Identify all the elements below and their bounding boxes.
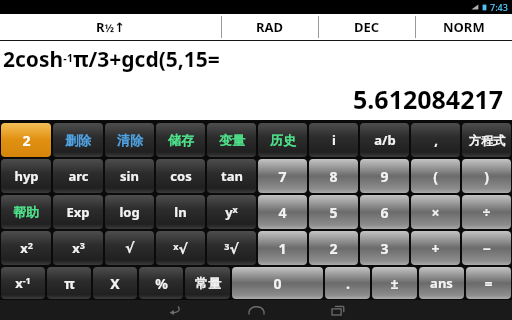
button[interactable]: , (411, 123, 460, 157)
button[interactable]: X (93, 267, 137, 299)
staticText: √ (125, 240, 135, 256)
button[interactable]: 6 (360, 195, 409, 229)
staticText: ± (390, 274, 399, 293)
button[interactable]: NORM (416, 14, 512, 40)
button[interactable]: DEC (319, 14, 415, 40)
staticText: hyp (14, 167, 39, 185)
button[interactable]: hyp (1, 159, 51, 193)
button[interactable]: 9 (360, 159, 409, 193)
button[interactable]: Home (243, 301, 269, 319)
staticText: log (119, 203, 140, 221)
button[interactable]: 储存 (156, 123, 205, 157)
staticText: x-1 (15, 274, 31, 292)
button[interactable]: Exp (53, 195, 103, 229)
staticText: 1 (278, 239, 287, 258)
button[interactable]: 3√ (207, 231, 256, 265)
staticText: Exp (66, 203, 90, 221)
button[interactable]: 2 (1, 123, 51, 157)
staticText: 7 (278, 167, 287, 186)
button[interactable]: arc (53, 159, 103, 193)
staticText: ans (430, 274, 453, 292)
staticText: ln (174, 203, 187, 221)
button[interactable]: √ (105, 231, 154, 265)
button[interactable]: 删除 (53, 123, 103, 157)
staticText: π (64, 274, 75, 293)
button[interactable]: a/b (360, 123, 409, 157)
button[interactable]: x√ (156, 231, 205, 265)
staticText: . (346, 274, 350, 293)
staticText: 0 (273, 274, 282, 293)
staticText: 6 (380, 203, 389, 222)
staticText: = (484, 274, 493, 293)
button[interactable]: . (325, 267, 370, 299)
staticText: cos (170, 167, 192, 185)
staticText: − (482, 239, 491, 258)
staticText: DEC (354, 18, 380, 36)
staticText: ) (484, 167, 489, 186)
button[interactable]: i (309, 123, 358, 157)
button[interactable]: % (139, 267, 183, 299)
staticText: 方程式 (469, 133, 505, 148)
button[interactable]: ± (372, 267, 417, 299)
button[interactable]: cos (156, 159, 205, 193)
staticText: 2 (329, 239, 338, 258)
staticText: NORM (443, 18, 485, 36)
staticText: 7:43 (490, 1, 508, 13)
staticText: 帮助 (13, 204, 39, 220)
staticText: 5.612084217 (353, 82, 504, 116)
staticText: % (155, 274, 168, 293)
button[interactable]: 常量 (185, 267, 230, 299)
staticText: X (110, 274, 120, 293)
button[interactable]: 历史 (258, 123, 307, 157)
staticText: a/b (374, 131, 396, 149)
button[interactable]: R½↑ (0, 14, 221, 40)
button[interactable]: 方程式 (462, 123, 511, 157)
button[interactable]: Back (161, 301, 187, 319)
button[interactable]: Recent apps (325, 301, 351, 319)
button[interactable]: 7 (258, 159, 307, 193)
button[interactable]: 8 (309, 159, 358, 193)
button[interactable]: 1 (258, 231, 307, 265)
staticText: i (332, 131, 336, 149)
button[interactable]: RAD (222, 14, 318, 40)
button[interactable]: yx (207, 195, 256, 229)
button[interactable]: ) (462, 159, 511, 193)
button[interactable]: 清除 (105, 123, 154, 157)
staticText: 3 (380, 239, 389, 258)
staticText: , (434, 131, 438, 149)
staticText: tan (221, 167, 243, 185)
button[interactable]: 3 (360, 231, 409, 265)
button[interactable]: − (462, 231, 511, 265)
button[interactable]: × (411, 195, 460, 229)
staticText: ( (433, 167, 438, 186)
button[interactable]: ÷ (462, 195, 511, 229)
staticText: 5 (329, 203, 338, 222)
staticText: 清除 (117, 132, 143, 148)
button[interactable]: 4 (258, 195, 307, 229)
staticText: x√ (173, 240, 188, 257)
button[interactable]: 变量 (207, 123, 256, 157)
button[interactable]: π (47, 267, 91, 299)
button[interactable]: 2 (309, 231, 358, 265)
staticText: R½↑ (96, 18, 126, 36)
button[interactable]: ans (419, 267, 464, 299)
button[interactable]: ln (156, 195, 205, 229)
button[interactable]: x-1 (1, 267, 45, 299)
button[interactable]: tan (207, 159, 256, 193)
button[interactable]: x3 (53, 231, 103, 265)
button[interactable]: log (105, 195, 154, 229)
staticText: RAD (256, 18, 284, 36)
staticText: 常量 (195, 275, 221, 291)
button[interactable]: 0 (232, 267, 323, 299)
button[interactable]: 帮助 (1, 195, 51, 229)
button[interactable]: x2 (1, 231, 51, 265)
button[interactable]: ( (411, 159, 460, 193)
staticText: + (431, 239, 440, 258)
staticText: 4 (278, 203, 287, 222)
button[interactable]: = (466, 267, 511, 299)
button[interactable]: + (411, 231, 460, 265)
staticText: 9 (380, 167, 389, 186)
staticText: ÷ (482, 203, 491, 222)
button[interactable]: 5 (309, 195, 358, 229)
button[interactable]: sin (105, 159, 154, 193)
